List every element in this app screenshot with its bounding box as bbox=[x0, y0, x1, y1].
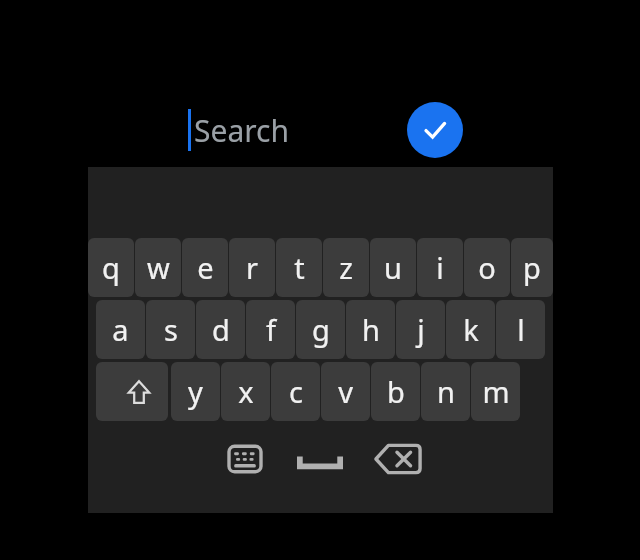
button[interactable]: t bbox=[276, 238, 322, 297]
button[interactable]: y bbox=[171, 362, 220, 421]
staticText: Search bbox=[194, 110, 289, 151]
button[interactable]: b bbox=[371, 362, 420, 421]
button[interactable]: q bbox=[88, 238, 134, 297]
staticText: j bbox=[417, 310, 425, 349]
staticText: w bbox=[147, 248, 170, 287]
staticText: a bbox=[112, 310, 129, 349]
button[interactable]: h bbox=[346, 300, 395, 359]
staticText: e bbox=[197, 248, 214, 287]
staticText: u bbox=[384, 248, 402, 287]
button[interactable]: p bbox=[511, 238, 553, 297]
button[interactable]: j bbox=[396, 300, 445, 359]
button[interactable]: v bbox=[321, 362, 370, 421]
button[interactable]: g bbox=[296, 300, 345, 359]
staticText: r bbox=[246, 248, 258, 287]
button[interactable]: f bbox=[246, 300, 295, 359]
button[interactable]: d bbox=[196, 300, 245, 359]
staticText: y bbox=[188, 372, 203, 411]
staticText: s bbox=[164, 310, 178, 349]
staticText: z bbox=[339, 248, 353, 287]
staticText: t bbox=[294, 248, 305, 287]
button[interactable]: k bbox=[446, 300, 495, 359]
staticText: i bbox=[436, 248, 444, 287]
button[interactable]: z bbox=[323, 238, 369, 297]
button[interactable]: Backspace bbox=[368, 429, 428, 489]
button[interactable]: w bbox=[135, 238, 181, 297]
button[interactable]: n bbox=[421, 362, 470, 421]
button[interactable]: Switch keyboard layout bbox=[218, 432, 272, 486]
staticText: l bbox=[517, 310, 525, 349]
button[interactable]: Space bbox=[290, 432, 350, 486]
button[interactable]: l bbox=[496, 300, 545, 359]
button[interactable]: u bbox=[370, 238, 416, 297]
staticText: o bbox=[478, 248, 496, 287]
staticText: b bbox=[387, 372, 405, 411]
staticText: f bbox=[266, 310, 276, 349]
staticText: m bbox=[482, 372, 510, 411]
staticText: g bbox=[312, 310, 330, 349]
staticText: h bbox=[362, 310, 380, 349]
button[interactable]: Search bbox=[160, 100, 410, 160]
button[interactable]: e bbox=[182, 238, 228, 297]
button[interactable]: i bbox=[417, 238, 463, 297]
button[interactable]: Confirm search bbox=[407, 102, 463, 158]
button[interactable]: a bbox=[96, 300, 145, 359]
button[interactable]: r bbox=[229, 238, 275, 297]
staticText: d bbox=[212, 310, 230, 349]
staticText: c bbox=[289, 372, 303, 411]
button[interactable]: m bbox=[471, 362, 520, 421]
staticText: q bbox=[102, 248, 120, 287]
staticText: n bbox=[437, 372, 455, 411]
button[interactable]: x bbox=[221, 362, 270, 421]
button[interactable]: Shift bbox=[96, 362, 168, 421]
staticText: x bbox=[238, 372, 254, 411]
button[interactable]: c bbox=[271, 362, 320, 421]
staticText: p bbox=[523, 248, 541, 287]
button[interactable]: s bbox=[146, 300, 195, 359]
staticText: k bbox=[463, 310, 479, 349]
button[interactable]: o bbox=[464, 238, 510, 297]
staticText: v bbox=[338, 372, 353, 411]
